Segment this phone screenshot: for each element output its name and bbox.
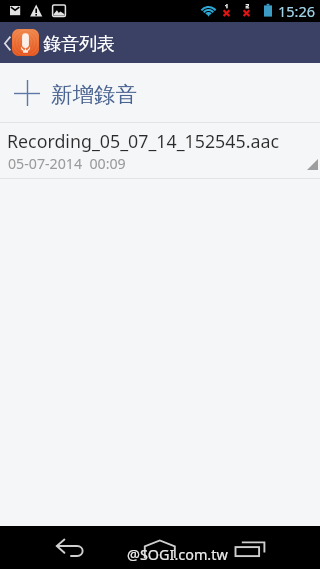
staticText: 15:26 [278,1,316,21]
button[interactable]: Recent apps [212,526,320,569]
button[interactable]: 新增錄音 [0,63,320,122]
staticText: @SOGI.com.tw [127,545,228,565]
staticText: 新增錄音 [51,81,137,108]
staticText: 錄音列表 [43,33,115,56]
staticText: Recording_05_07_14_152545.aac [7,129,279,153]
button[interactable]: Back [0,526,106,569]
button[interactable]: Recording_05_07_14_152545.aac [0,123,320,178]
button[interactable]: Back [0,22,12,63]
button[interactable]: Home [106,526,212,569]
staticText: 05-07-2014 00:09 [8,154,126,173]
